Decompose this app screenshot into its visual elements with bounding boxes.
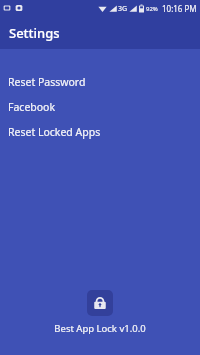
staticText: Reset Locked Apps [8,125,101,139]
staticText: 10:16 PM [162,3,197,14]
other: App Lock logo [87,290,113,316]
staticText: Best App Lock v1.0.0 [54,322,146,335]
staticText: Settings [9,24,60,42]
button[interactable]: Facebook [0,94,200,119]
staticText: Facebook [8,100,56,114]
staticText: Reset Password [8,75,86,89]
staticText: 92% [146,5,158,13]
staticText: 3G [118,4,128,14]
button[interactable]: Reset Password [0,69,200,94]
button[interactable]: Reset Locked Apps [0,119,200,144]
